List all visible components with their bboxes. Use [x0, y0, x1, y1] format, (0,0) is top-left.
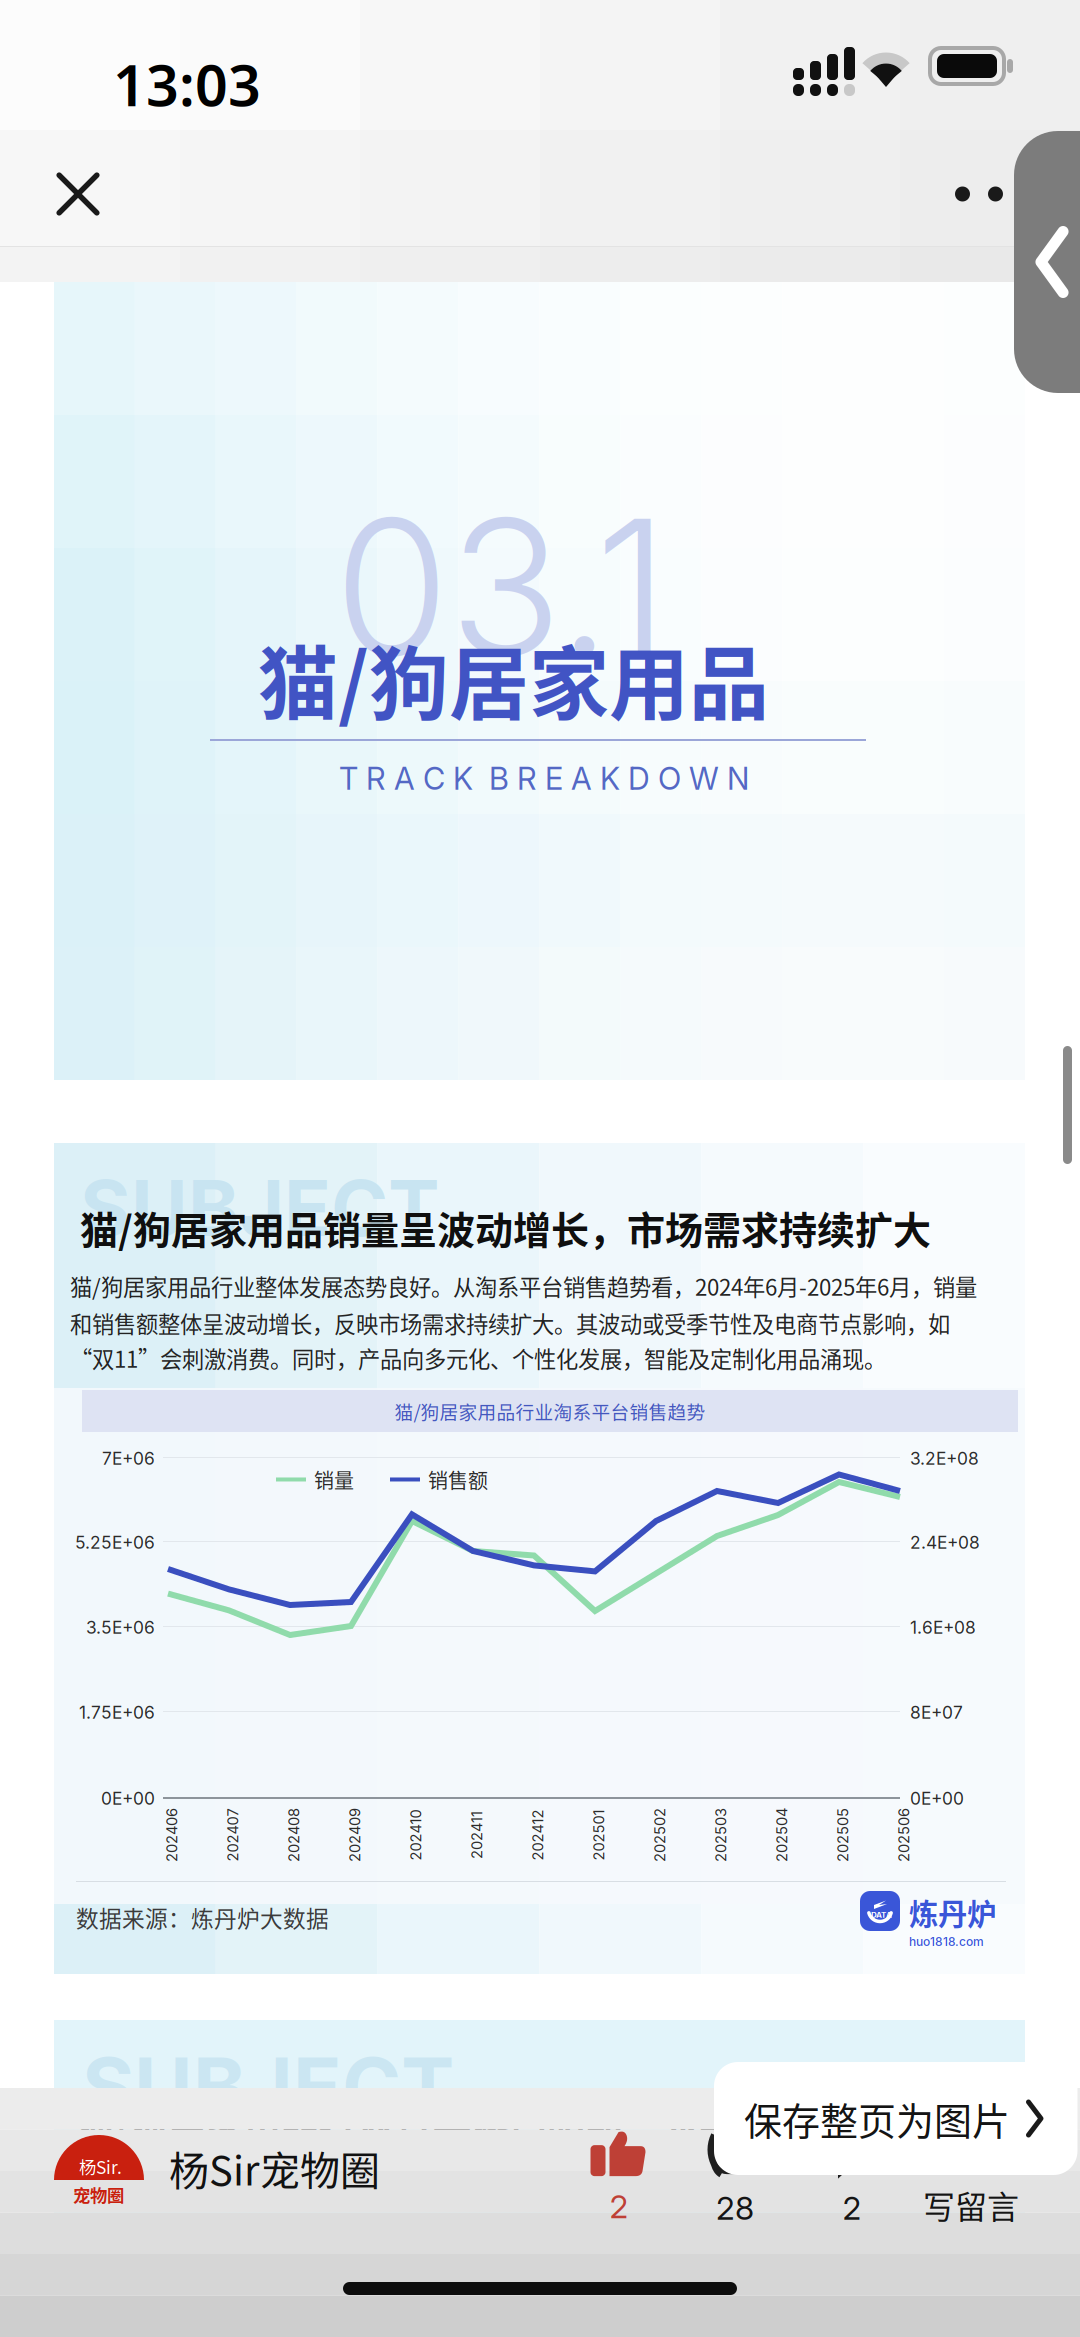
staticText: 和销售额整体呈波动增长，反映市场需求持续扩大。其波动或受季节性及电商节点影响，如 [70, 1307, 950, 1339]
staticText: 0E+00 [101, 1788, 155, 1809]
staticText: 202503 [694, 1826, 748, 1844]
button[interactable]: 保存整页为图片 [714, 2062, 1077, 2175]
staticText: 2.4E+08 [910, 1532, 980, 1553]
staticText: 28 [716, 2189, 754, 2227]
staticText: 销量 [314, 1465, 354, 1494]
staticText: 销售额 [428, 1465, 488, 1494]
staticText: 7E+06 [102, 1448, 155, 1469]
staticText: 杨Sir宠物圈 [169, 2139, 380, 2197]
staticText: 202502 [633, 1826, 687, 1844]
staticText: 2 [842, 2189, 861, 2227]
staticText: 13:03 [113, 46, 261, 122]
staticText: huo1818.com [909, 1934, 984, 1949]
staticText: 202506 [877, 1826, 931, 1844]
staticText: 猫/狗居家用品销量呈波动增长，市场需求持续扩大 [80, 1200, 931, 1255]
staticText: 202501 [573, 1826, 624, 1844]
staticText: SUBJECT [82, 2038, 454, 2135]
staticText: 1.6E+08 [910, 1617, 976, 1638]
button[interactable]: 写留言 [896, 2108, 1046, 2228]
staticText: 202410 [390, 1826, 441, 1844]
staticText: 202412 [512, 1826, 563, 1844]
staticText: 202407 [206, 1826, 259, 1844]
staticText: 写留言 [923, 2182, 1019, 2228]
staticText: 1.75E+06 [79, 1702, 155, 1723]
staticText: 数据来源：炼丹炉大数据 [76, 1901, 329, 1934]
staticText: 202408 [267, 1826, 321, 1844]
staticText: 202504 [755, 1826, 809, 1844]
button[interactable]: 2 [563, 2118, 675, 2238]
button[interactable]: Favourite [679, 2118, 791, 2238]
staticText: 猫/狗居家用品行业竞争格局明朗，龙头企业持续领先 [76, 2098, 965, 2153]
staticText: 猫/狗居家用品 [258, 620, 769, 736]
staticText: 猫/狗居家用品行业整体发展态势良好。从淘系平台销售趋势看，2024年6月-202… [70, 1270, 977, 1302]
staticText: 保存整页为图片 [744, 2091, 1010, 2146]
staticText: 炼丹炉 [909, 1891, 996, 1933]
staticText: 202505 [816, 1826, 870, 1844]
staticText: 2 [609, 2187, 628, 2226]
staticText: 0E+00 [910, 1788, 964, 1809]
staticText: DATA [871, 1910, 892, 1920]
staticText: “双11”会刺激消费。同时，产品向多元化、个性化发展，智能及定制化用品涌现。 [70, 1342, 886, 1374]
button[interactable]: Close [28, 144, 128, 244]
button[interactable]: More options [932, 147, 1026, 241]
button[interactable]: Comments [796, 2118, 908, 2238]
staticText: T R A C K B R E A K D O W N [339, 760, 749, 797]
staticText: 202411 [453, 1826, 501, 1844]
staticText: 宠物圈 [73, 2182, 124, 2207]
staticText: 202409 [328, 1826, 382, 1844]
staticText: SUBJECT [80, 1161, 440, 1255]
staticText: 3.5E+06 [86, 1617, 155, 1638]
staticText: 8E+07 [910, 1702, 963, 1723]
staticText: 5.25E+06 [75, 1532, 155, 1553]
staticText: 3.2E+08 [910, 1448, 979, 1469]
staticText: 03.1 [334, 474, 668, 700]
button[interactable]: 杨Sir. [0, 2109, 402, 2227]
staticText: 杨Sir. [79, 2154, 122, 2179]
staticText: 202406 [145, 1826, 199, 1844]
staticText: 猫/狗居家用品行业淘系平台销售趋势 [394, 1397, 705, 1424]
